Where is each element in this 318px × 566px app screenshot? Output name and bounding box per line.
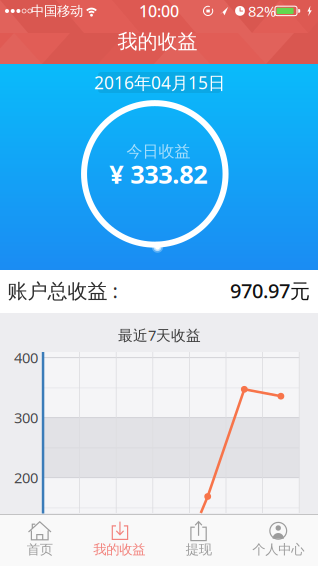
staticText: 2016年04月15日 <box>94 71 225 94</box>
staticText: 首页 <box>27 541 53 558</box>
staticText: 400 <box>14 348 38 367</box>
staticText: 82% <box>248 1 276 21</box>
staticText: 今日收益 <box>126 141 190 161</box>
staticText: 个人中心 <box>252 541 304 558</box>
staticText: 970.97元 <box>230 277 310 304</box>
staticText: 我的收益 <box>117 29 197 54</box>
staticText: 我的收益 <box>93 541 145 558</box>
staticText: 200 <box>14 468 38 487</box>
staticText: ¥ 333.82 <box>109 157 207 191</box>
staticText: 账户总收益 : <box>7 277 117 304</box>
staticText: 中国移动 <box>31 3 83 19</box>
staticText: 10:00 <box>139 0 179 22</box>
staticText: 300 <box>14 408 38 427</box>
staticText: 提现 <box>186 541 212 558</box>
staticText: 最近7天收益 <box>118 325 201 345</box>
